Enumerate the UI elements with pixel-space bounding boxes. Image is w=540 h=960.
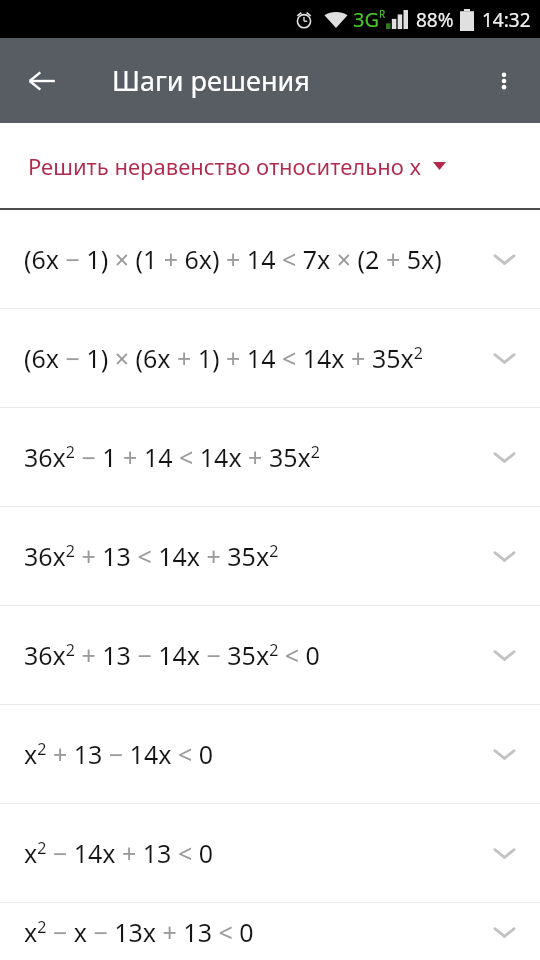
button[interactable]: x2 − 14x + 13 < 0 xyxy=(0,804,540,902)
staticText: 36x2 + 13 < 14x + 35x2 xyxy=(24,539,279,573)
button[interactable]: Expand step xyxy=(482,237,526,281)
staticText: x2 + 13 − 14x < 0 xyxy=(24,737,214,771)
staticText: (6x − 1) × (1 + 6x) + 14 < 7x × (2 + 5x) xyxy=(24,242,442,276)
button[interactable]: Решить неравенство относительно x xyxy=(0,123,540,208)
button[interactable]: Expand step xyxy=(482,831,526,875)
button[interactable]: (6x − 1) × (6x + 1) + 14 < 14x + 35x2 xyxy=(0,309,540,407)
button[interactable]: More options xyxy=(478,55,530,107)
button[interactable]: Expand step xyxy=(482,534,526,578)
staticText: x2 − x − 13x + 13 < 0 xyxy=(24,915,254,949)
button[interactable]: Expand step xyxy=(482,910,526,954)
button[interactable]: Expand step xyxy=(482,336,526,380)
button[interactable]: 36x2 + 13 − 14x − 35x2 < 0 xyxy=(0,606,540,704)
button[interactable]: Expand step xyxy=(482,435,526,479)
button[interactable]: (6x − 1) × (1 + 6x) + 14 < 7x × (2 + 5x) xyxy=(0,210,540,308)
staticText: Решить неравенство относительно x xyxy=(28,151,422,181)
staticText: 36x2 + 13 − 14x − 35x2 < 0 xyxy=(24,638,320,672)
staticText: x2 − 14x + 13 < 0 xyxy=(24,836,214,870)
staticText: 88% xyxy=(416,7,454,33)
staticText: (6x − 1) × (6x + 1) + 14 < 14x + 35x2 xyxy=(24,341,423,375)
button[interactable]: x2 − x − 13x + 13 < 0 xyxy=(0,903,540,960)
button[interactable]: x2 + 13 − 14x < 0 xyxy=(0,705,540,803)
button[interactable]: 36x2 + 13 < 14x + 35x2 xyxy=(0,507,540,605)
staticText: 3G xyxy=(353,6,379,33)
staticText: R xyxy=(379,7,386,21)
staticText: 14:32 xyxy=(482,7,531,33)
staticText: 36x2 − 1 + 14 < 14x + 35x2 xyxy=(24,440,320,474)
button[interactable]: Expand step xyxy=(482,633,526,677)
button[interactable]: Back xyxy=(14,53,70,109)
button[interactable]: 36x2 − 1 + 14 < 14x + 35x2 xyxy=(0,408,540,506)
staticText: Шаги решения xyxy=(112,62,310,99)
button[interactable]: Expand step xyxy=(482,732,526,776)
